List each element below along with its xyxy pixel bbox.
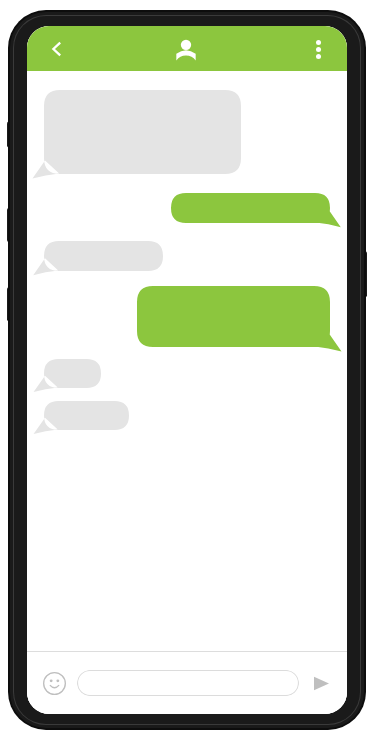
button[interactable]: Contact profile (168, 31, 204, 67)
button[interactable]: Insert emoji (39, 668, 69, 698)
button[interactable]: More options (300, 31, 336, 67)
button[interactable]: Back (39, 31, 75, 67)
button[interactable]: Sent message (171, 193, 330, 223)
button[interactable]: Send message (305, 667, 337, 699)
button[interactable]: Received message (44, 401, 129, 430)
button[interactable]: Sent message (137, 286, 330, 347)
button[interactable]: Received message (44, 241, 163, 271)
button[interactable]: Received message (44, 359, 101, 388)
button[interactable] (77, 670, 299, 696)
